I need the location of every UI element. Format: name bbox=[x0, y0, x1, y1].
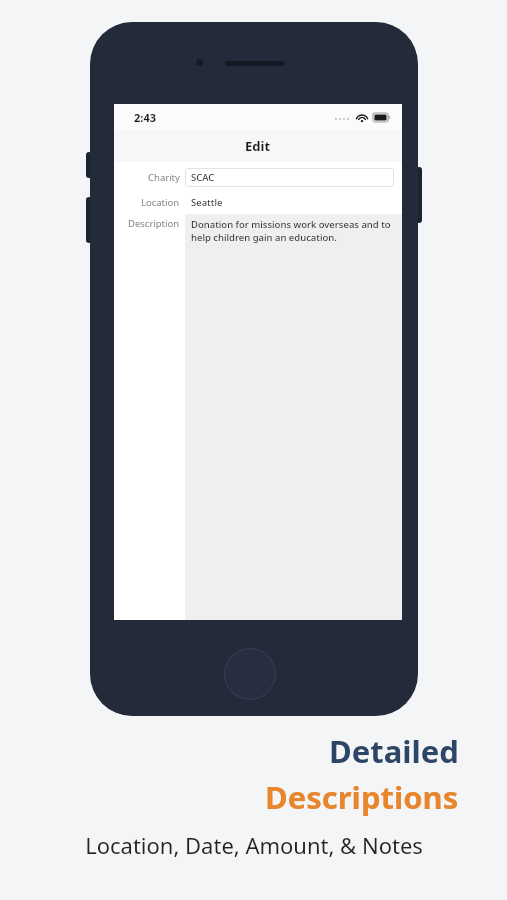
staticText: SCAC bbox=[191, 171, 215, 184]
staticText: Seattle bbox=[191, 196, 223, 209]
button[interactable]: Description bbox=[114, 214, 402, 620]
staticText: Donation for missions work overseas and … bbox=[191, 218, 394, 244]
button[interactable]: Charity bbox=[114, 166, 402, 188]
staticText: Edit bbox=[245, 137, 271, 155]
staticText: Location bbox=[141, 196, 180, 209]
staticText: Description bbox=[128, 217, 180, 230]
button[interactable]: Home bbox=[224, 648, 276, 700]
staticText: Descriptions bbox=[265, 776, 459, 818]
button[interactable]: Location bbox=[114, 192, 402, 212]
staticText: Location, Date, Amount, & Notes bbox=[85, 830, 423, 860]
staticText: Charity bbox=[148, 171, 180, 184]
staticText: Detailed bbox=[329, 730, 459, 772]
staticText: 2:43 bbox=[134, 110, 156, 125]
